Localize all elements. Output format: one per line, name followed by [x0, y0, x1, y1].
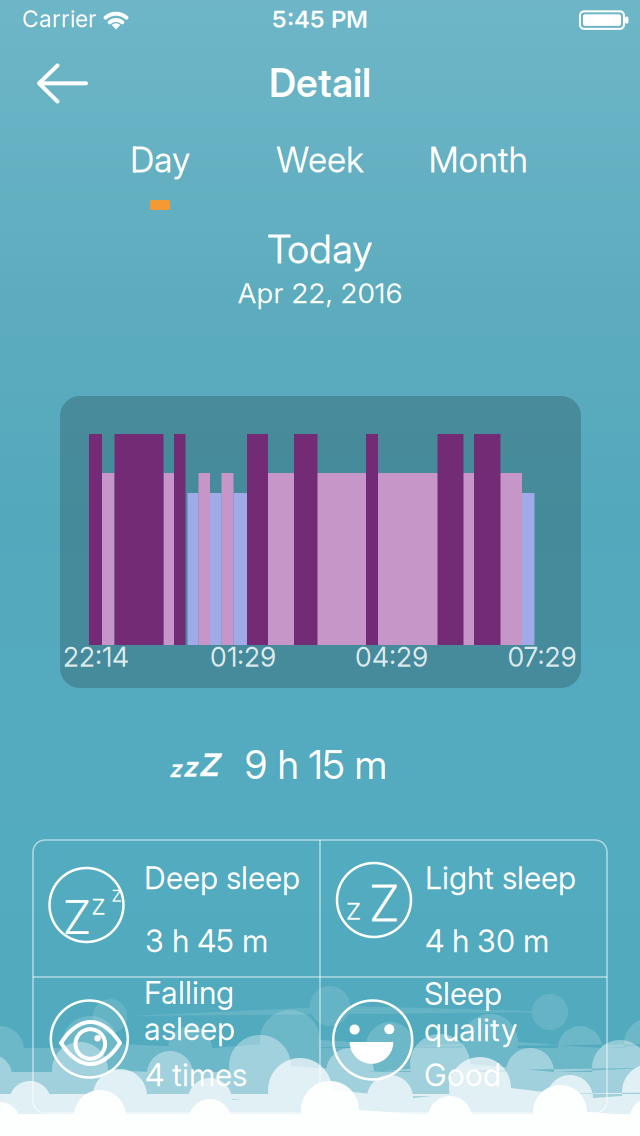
staticText: Apr 22, 2016 [237, 276, 402, 309]
staticText: 4 h 30 m [425, 923, 549, 959]
staticText: z [345, 889, 361, 927]
staticText: Z [208, 747, 228, 783]
staticText: Carrier [22, 6, 96, 32]
staticText: 5:45 PM [272, 5, 368, 33]
button[interactable]: Back [35, 55, 91, 111]
staticText: Sleep quality [424, 976, 517, 1048]
staticText: Month [428, 140, 527, 180]
button[interactable]: Day [100, 128, 220, 192]
staticText: Good [424, 1057, 501, 1093]
staticText: 4 times [145, 1057, 247, 1093]
staticText: 07:29 [507, 641, 576, 673]
staticText: 3 h 45 m [145, 923, 268, 959]
staticText: Week [276, 140, 364, 180]
staticText: 9 h 15 m [244, 742, 387, 788]
button[interactable]: Month [408, 128, 548, 192]
button[interactable]: Week [255, 128, 385, 192]
staticText: Falling asleep [144, 975, 235, 1047]
staticText: z [175, 756, 188, 782]
staticText: z [91, 887, 106, 921]
staticText: z [111, 881, 122, 907]
staticText: z [190, 751, 205, 783]
staticText: 04:29 [355, 641, 428, 673]
staticText: Today [267, 225, 373, 273]
staticText: Detail [269, 60, 371, 106]
staticText: 01:29 [210, 641, 276, 673]
staticText: 22:14 [63, 641, 129, 673]
staticText: Z [62, 889, 91, 945]
staticText: Deep sleep [144, 860, 300, 896]
staticText: Light sleep [425, 860, 576, 896]
staticText: Z [368, 873, 399, 933]
staticText: Day [130, 140, 190, 180]
